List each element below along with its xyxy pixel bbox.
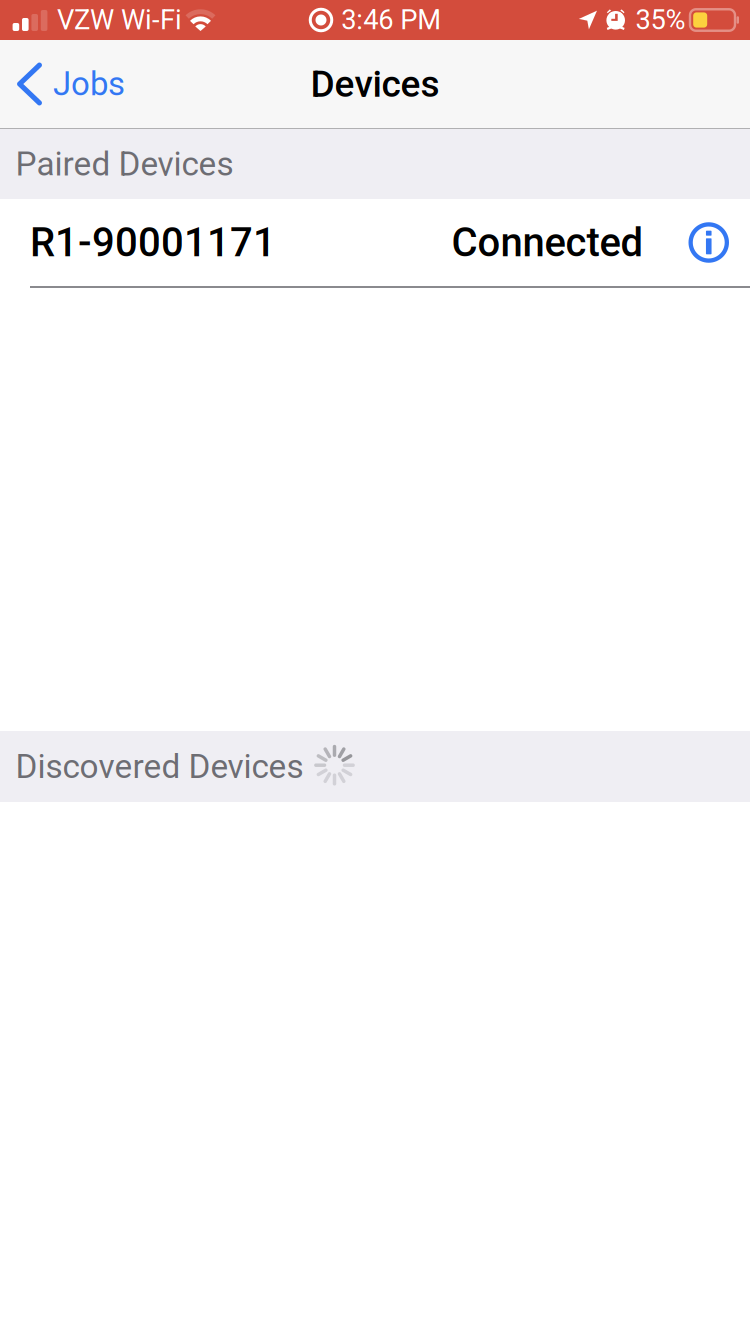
staticText: VZW Wi-Fi [57,4,182,36]
button[interactable]: R1-90001171 [0,199,750,288]
staticText: Paired Devices [15,144,233,184]
button[interactable]: Jobs [0,40,139,128]
staticText: 35% [635,4,685,36]
staticText: R1-90001171 [30,219,276,266]
staticText: Discovered Devices [15,747,303,786]
staticText: Connected [451,219,643,266]
staticText: Devices [310,62,439,106]
staticText: Jobs [53,65,125,103]
staticText: 3:46 PM [341,4,441,36]
